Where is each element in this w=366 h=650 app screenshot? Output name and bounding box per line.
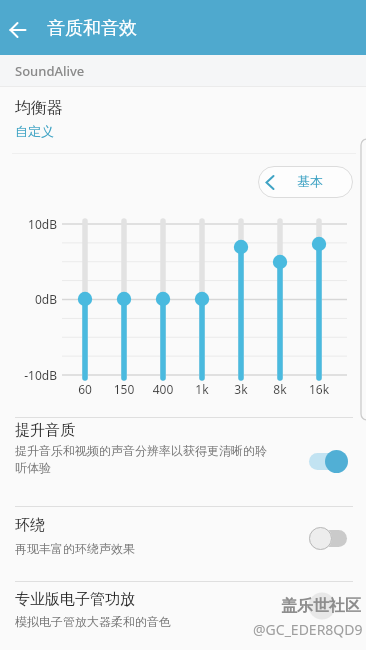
staticText: 再现丰富的环绕声效果: [15, 541, 135, 556]
staticText: 音质和音效: [47, 17, 137, 40]
staticText: 1k: [182, 381, 222, 397]
staticText: @GC_EDER8QD9: [253, 620, 363, 639]
staticText: 3k: [221, 381, 261, 397]
staticText: 8k: [260, 381, 300, 397]
staticText: 环绕: [15, 516, 45, 535]
button[interactable]: 基本: [258, 166, 353, 198]
button[interactable]: 专业版电子管功放: [0, 582, 366, 650]
staticText: -10dB: [7, 367, 57, 383]
button[interactable]: 提升音质: [0, 418, 366, 506]
staticText: 提升音乐和视频的声音分辨率以获得更清晰的聆听体验: [15, 443, 271, 476]
staticText: 专业版电子管功放: [15, 590, 135, 609]
staticText: 400: [143, 381, 183, 397]
staticText: 均衡器: [15, 98, 63, 118]
staticText: 盖乐世社区: [281, 596, 361, 616]
button[interactable]: [303, 443, 353, 479]
button[interactable]: 均衡器: [0, 90, 366, 145]
staticText: 0dB: [7, 291, 57, 307]
staticText: 模拟电子管放大器柔和的音色: [15, 614, 171, 629]
staticText: 10dB: [7, 216, 57, 232]
button[interactable]: [303, 520, 353, 556]
staticText: 提升音质: [15, 421, 75, 440]
button[interactable]: [0, 12, 36, 48]
staticText: 16k: [299, 381, 339, 397]
staticText: SoundAlive: [15, 62, 85, 80]
staticText: 60: [65, 381, 105, 397]
staticText: 自定义: [15, 123, 54, 139]
staticText: 基本: [297, 173, 323, 189]
staticText: 150: [104, 381, 144, 397]
button[interactable]: 环绕: [0, 507, 366, 581]
